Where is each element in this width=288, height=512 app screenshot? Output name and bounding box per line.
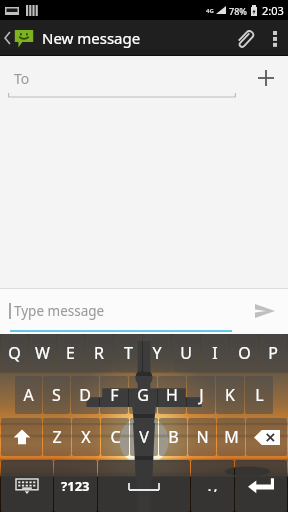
staticText: New message — [42, 28, 141, 48]
staticText: U — [180, 342, 192, 364]
staticText: T — [124, 342, 133, 364]
staticText: To — [14, 69, 30, 88]
button[interactable]: V — [130, 418, 158, 456]
button[interactable]: J — [187, 376, 215, 414]
button[interactable]: B — [159, 418, 187, 456]
button[interactable]: H — [158, 376, 186, 414]
staticText: F — [110, 384, 119, 406]
staticText: Q — [8, 342, 21, 364]
staticText: G — [137, 384, 149, 406]
button[interactable]: Q — [1, 334, 28, 372]
button[interactable]: Space — [98, 460, 190, 512]
staticText: L — [255, 384, 264, 406]
staticText: P — [268, 342, 278, 364]
staticText: V — [139, 426, 149, 448]
staticText: J — [199, 384, 204, 406]
staticText: Z — [52, 426, 62, 448]
staticText: D — [79, 384, 91, 406]
staticText: Y — [152, 342, 162, 364]
button[interactable]: . , — [191, 460, 234, 512]
button[interactable]: Attach — [226, 20, 262, 56]
button[interactable]: M — [217, 418, 245, 456]
button[interactable]: More options — [262, 20, 288, 56]
button[interactable]: K — [216, 376, 244, 414]
staticText: C — [110, 426, 121, 448]
staticText: 2:03 — [262, 3, 284, 18]
button[interactable]: C — [101, 418, 129, 456]
button[interactable]: D — [71, 376, 99, 414]
staticText: S — [52, 384, 61, 406]
button[interactable]: Type message — [10, 288, 242, 334]
button[interactable]: Hide keyboard — [1, 460, 53, 512]
staticText: E — [66, 342, 75, 364]
staticText: X — [81, 426, 91, 448]
button[interactable]: I — [201, 334, 229, 372]
button[interactable]: Enter — [235, 460, 287, 512]
staticText: 4G — [206, 7, 214, 15]
button[interactable]: S — [43, 376, 70, 414]
staticText: M — [224, 426, 239, 448]
button[interactable]: U — [172, 334, 200, 372]
staticText: 78% — [229, 5, 247, 17]
staticText: I — [212, 342, 218, 364]
button[interactable]: Add recipient — [244, 56, 288, 100]
button[interactable]: G — [129, 376, 157, 414]
button[interactable]: P — [259, 334, 287, 372]
button[interactable]: T — [114, 334, 142, 372]
button[interactable]: R — [85, 334, 113, 372]
button[interactable]: Y — [143, 334, 171, 372]
staticText: A — [23, 384, 34, 406]
button[interactable]: F — [100, 376, 128, 414]
button[interactable]: ?123 — [54, 460, 97, 512]
button[interactable]: A — [15, 376, 42, 414]
staticText: ?123 — [61, 477, 90, 495]
button[interactable]: E — [57, 334, 84, 372]
staticText: H — [166, 384, 178, 406]
button[interactable]: To — [8, 56, 236, 100]
staticText: R — [94, 342, 104, 364]
staticText: Type message — [14, 302, 105, 320]
staticText: . , — [208, 479, 218, 494]
button[interactable]: L — [245, 376, 273, 414]
staticText: K — [225, 384, 235, 406]
button[interactable]: Backspace — [246, 418, 287, 456]
button[interactable]: Navigate up — [0, 20, 36, 56]
button[interactable]: Send — [242, 288, 288, 334]
button[interactable]: Shift — [1, 418, 42, 456]
button[interactable]: N — [188, 418, 216, 456]
staticText: W — [35, 342, 50, 364]
staticText: N — [196, 426, 209, 448]
staticText: B — [168, 426, 179, 448]
button[interactable]: Z — [43, 418, 71, 456]
staticText: O — [238, 342, 251, 364]
button[interactable]: X — [72, 418, 100, 456]
button[interactable]: W — [29, 334, 56, 372]
button[interactable]: O — [230, 334, 258, 372]
